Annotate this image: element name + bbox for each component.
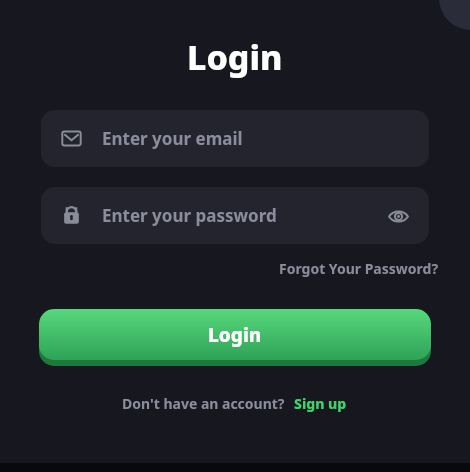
button[interactable]: Sign up	[292, 392, 349, 415]
staticText: Forgot Your Password?	[279, 259, 439, 278]
staticText: Login	[208, 322, 262, 348]
button[interactable]: Enter your password	[41, 187, 429, 244]
button[interactable]: Forgot Your Password?	[276, 256, 442, 281]
staticText: Login	[187, 34, 283, 80]
staticText: Enter your password	[102, 204, 277, 227]
button[interactable]: Show password	[383, 201, 413, 231]
button[interactable]: Enter your email	[41, 110, 429, 167]
staticText: Enter your email	[102, 127, 243, 150]
staticText: Don't have an account?	[122, 394, 285, 413]
staticText: Sign up	[294, 394, 347, 413]
button[interactable]: Login	[39, 309, 431, 366]
